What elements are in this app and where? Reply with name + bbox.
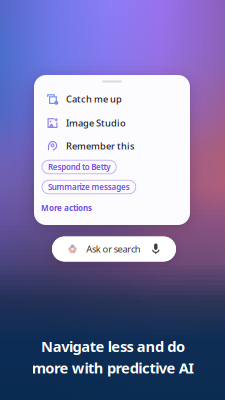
button[interactable]: More actions [34,202,190,214]
button[interactable]: Summarize messages [34,180,190,194]
staticText: Navigate less and do [41,336,185,356]
button[interactable]: Catch me up [34,88,190,110]
staticText: Remember this [66,140,135,152]
button[interactable]: Remember this [34,135,190,157]
button[interactable]: Respond to Betty [34,160,190,174]
staticText: More actions [41,203,92,213]
staticText: Image Studio [66,117,126,129]
staticText: Summarize messages [48,182,130,192]
staticText: Ask or search [86,243,141,255]
staticText: Respond to Betty [48,162,110,172]
button[interactable]: Ask or search [52,236,176,261]
staticText: Catch me up [66,93,122,105]
staticText: more with predictive AI [32,358,194,377]
button[interactable]: Image Studio [34,112,190,134]
